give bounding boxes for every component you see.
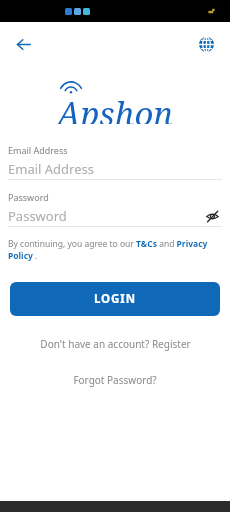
button[interactable]: Don't have an account? Register [40, 337, 191, 351]
staticText: Password [8, 207, 67, 225]
button[interactable]: Forgot Password? [73, 373, 157, 387]
button[interactable]: Email Address [8, 158, 222, 179]
button[interactable]: By continuing, you agree to our T&Cs and… [8, 238, 222, 262]
button[interactable]: Show password [202, 206, 222, 226]
staticText: LOGIN [94, 291, 136, 307]
staticText: Apshon [57, 91, 174, 124]
button[interactable]: Back [9, 30, 37, 58]
button[interactable]: LOGIN [10, 282, 220, 316]
staticText: Email Address [8, 160, 94, 178]
button[interactable]: Change language [192, 30, 220, 58]
staticText: Password [8, 191, 49, 203]
staticText: Email Address [8, 144, 68, 156]
